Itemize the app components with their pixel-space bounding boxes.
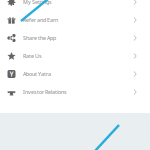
staticText: Rate Us bbox=[23, 52, 42, 60]
staticText: About Yatra bbox=[23, 70, 51, 78]
staticText: Refer and Earn bbox=[23, 16, 58, 24]
staticText: Investor Relations bbox=[23, 88, 67, 96]
button[interactable]: Rate Us bbox=[0, 47, 150, 65]
button[interactable]: Investor Relations bbox=[0, 83, 150, 101]
staticText: Y bbox=[9, 70, 13, 78]
button[interactable]: Y bbox=[0, 65, 150, 83]
button[interactable]: Refer and Earn bbox=[0, 11, 150, 29]
staticText: Share the App bbox=[23, 34, 56, 42]
button[interactable]: Share the App bbox=[0, 29, 150, 47]
button[interactable]: My Settings bbox=[0, 0, 150, 11]
staticText: My Settings bbox=[23, 0, 52, 6]
